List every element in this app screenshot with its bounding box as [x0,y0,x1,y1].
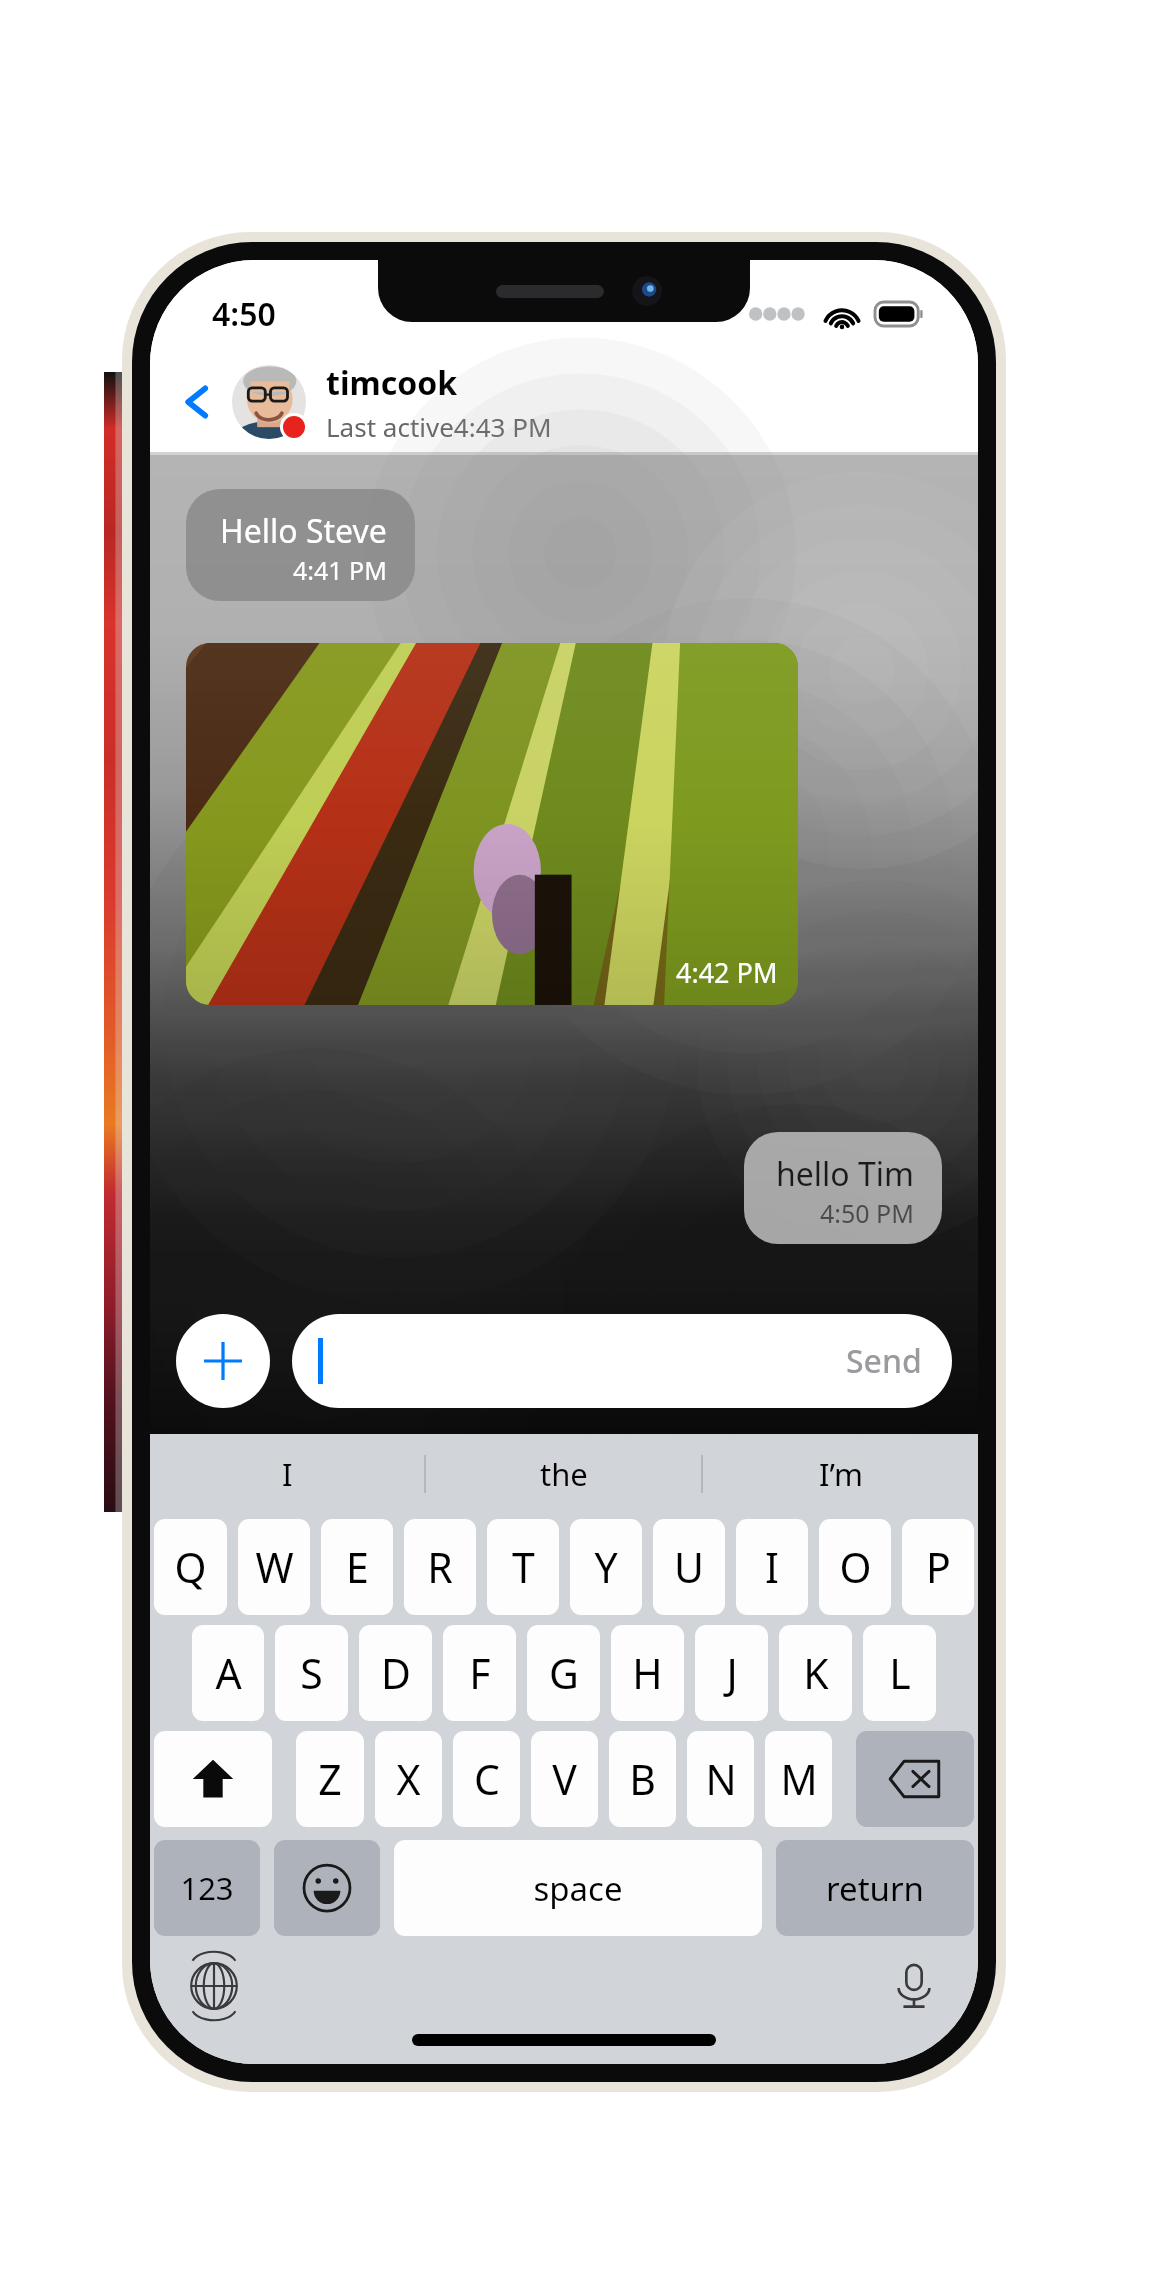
button[interactable]: I [150,1434,424,1514]
button[interactable]: W [238,1519,310,1615]
staticText: Last active4:43 PM [326,409,552,444]
staticText: the [540,1453,588,1495]
staticText: K [803,1645,829,1701]
button[interactable]: A [192,1625,264,1721]
staticText: 4:50 PM [820,1196,914,1230]
staticText: N [705,1751,737,1807]
staticText: M [780,1751,818,1807]
button[interactable]: U [653,1519,725,1615]
button[interactable]: Hello Steve [186,489,415,601]
button[interactable]: R [404,1519,476,1615]
button[interactable]: 123 [154,1840,260,1936]
button[interactable]: Dictate [878,1950,950,2022]
staticText: X [396,1751,421,1807]
staticText: R [427,1539,453,1595]
staticText: 4:42 PM [676,954,778,991]
staticText: Hello Steve [220,509,387,553]
staticText: I [282,1453,293,1495]
button[interactable]: Back [164,369,230,435]
staticText: I’m [819,1453,863,1495]
button[interactable]: Backspace [856,1731,974,1827]
staticText: 4:50 [212,292,276,336]
button[interactable]: Change keyboard [178,1950,250,2022]
staticText: timcook [326,361,458,405]
button[interactable]: G [527,1625,600,1721]
button[interactable]: M [765,1731,832,1827]
staticText: T [512,1539,535,1595]
button[interactable]: Send [292,1314,952,1408]
button[interactable]: O [819,1519,891,1615]
button[interactable]: hello Tim [744,1132,942,1244]
button[interactable]: F [443,1625,516,1721]
button[interactable]: K [779,1625,852,1721]
button[interactable]: Add attachment [176,1314,270,1408]
button[interactable]: D [359,1625,432,1721]
staticText: return [826,1866,924,1911]
staticText: Y [594,1539,618,1595]
staticText: O [839,1539,872,1595]
staticText: W [255,1539,294,1595]
staticText: G [549,1645,579,1701]
button[interactable]: Emoji [274,1840,380,1936]
staticText: H [632,1645,663,1701]
button[interactable]: the [426,1434,701,1514]
staticText: U [674,1539,704,1595]
staticText: I [765,1539,779,1595]
staticText: C [474,1751,500,1807]
staticText: Q [174,1539,207,1595]
button[interactable]: timcook [326,361,978,444]
button[interactable]: Q [154,1519,227,1615]
staticText: D [381,1645,411,1701]
button[interactable]: P [902,1519,974,1615]
staticText: space [533,1866,623,1911]
button[interactable]: Photo message [186,643,798,1005]
button[interactable]: S [275,1625,348,1721]
button[interactable]: E [321,1519,393,1615]
staticText: Z [318,1751,342,1807]
button[interactable]: return [776,1840,974,1936]
staticText: L [889,1645,911,1701]
button[interactable]: T [487,1519,559,1615]
staticText: B [629,1751,656,1807]
staticText: F [469,1645,491,1701]
button[interactable] [230,363,308,441]
staticText: 4:41 PM [293,553,387,587]
staticText: Send [846,1339,922,1383]
button[interactable]: B [609,1731,676,1827]
button[interactable]: Shift [154,1731,272,1827]
staticText: V [552,1751,577,1807]
button[interactable]: N [687,1731,754,1827]
button[interactable]: I [736,1519,808,1615]
button[interactable]: L [863,1625,936,1721]
staticText: E [346,1539,369,1595]
staticText: A [215,1645,242,1701]
staticText: S [300,1645,323,1701]
button[interactable]: Z [296,1731,364,1827]
button[interactable]: X [375,1731,442,1827]
button[interactable]: H [611,1625,684,1721]
staticText: J [726,1645,738,1701]
button[interactable]: Y [570,1519,642,1615]
staticText: P [926,1539,951,1595]
button[interactable]: V [531,1731,598,1827]
button[interactable]: C [453,1731,520,1827]
button[interactable]: space [394,1840,762,1936]
staticText: hello Tim [776,1152,914,1196]
button[interactable]: J [695,1625,768,1721]
staticText: 123 [180,1867,234,1909]
button[interactable]: I’m [703,1434,978,1514]
